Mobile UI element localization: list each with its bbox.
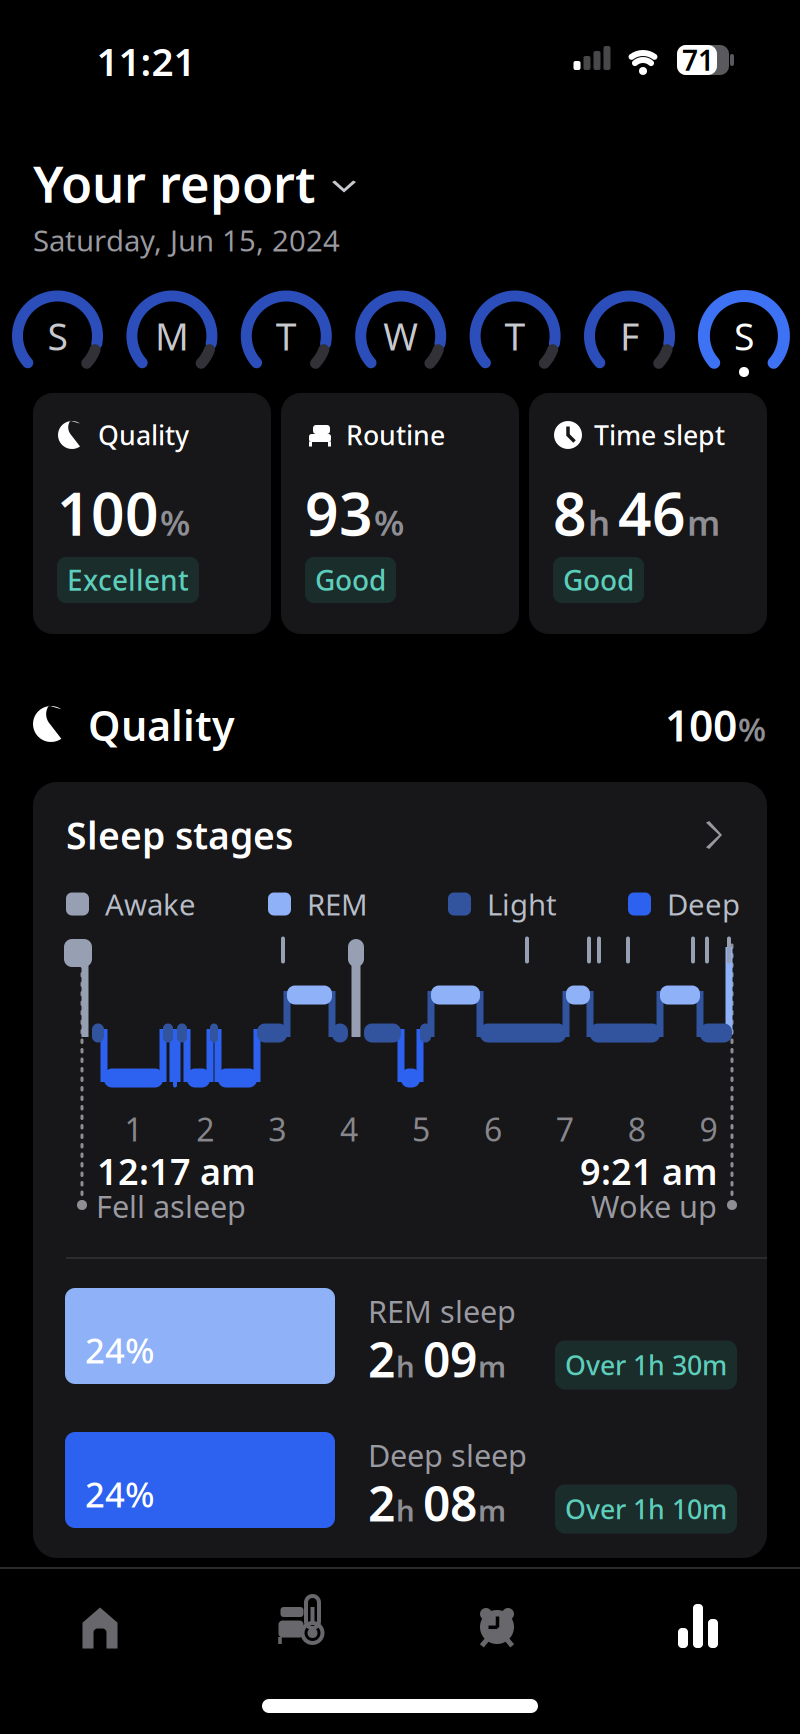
staticText: T — [276, 311, 297, 361]
staticText: Deep sleep — [368, 1435, 527, 1475]
staticText: 8 — [628, 1108, 646, 1150]
staticText: 24% — [85, 1327, 155, 1373]
button[interactable] — [633, 1583, 763, 1673]
staticText: 5 — [412, 1108, 430, 1150]
staticText: h — [396, 1491, 415, 1530]
button[interactable] — [235, 1583, 365, 1673]
button[interactable]: F — [582, 289, 676, 383]
staticText: % — [738, 708, 766, 750]
staticText: Time slept — [594, 417, 725, 453]
staticText: m — [687, 499, 720, 545]
staticText: 4 — [340, 1108, 358, 1150]
button[interactable] — [35, 1583, 165, 1673]
staticText: REM — [307, 884, 368, 923]
staticText: Awake — [105, 884, 196, 923]
button[interactable]: T — [239, 289, 333, 383]
staticText: M — [155, 311, 189, 361]
staticText: T — [505, 311, 526, 361]
staticText: 11:21 — [96, 35, 195, 87]
staticText: 71 — [682, 41, 714, 79]
staticText: Excellent — [67, 561, 189, 599]
staticText: Saturday, Jun 15, 2024 — [33, 220, 340, 259]
staticText: 100 — [57, 474, 159, 552]
staticText: 3 — [268, 1108, 286, 1150]
button[interactable]: Routine — [281, 393, 519, 634]
staticText: 24% — [85, 1471, 155, 1517]
button[interactable]: S — [10, 289, 104, 383]
staticText: 2 — [368, 1327, 395, 1391]
staticText: Good — [563, 561, 634, 599]
staticText: Quality — [88, 698, 235, 752]
staticText: Over 1h 30m — [565, 1347, 727, 1383]
staticText: 2 — [196, 1108, 214, 1150]
staticText: Sleep stages — [66, 810, 293, 860]
staticText: 08 — [423, 1471, 477, 1535]
staticText: F — [620, 311, 639, 361]
staticText: m — [478, 1491, 506, 1530]
staticText: Quality — [98, 417, 189, 453]
staticText: 93 — [305, 474, 373, 552]
staticText: 100 — [665, 697, 737, 753]
button[interactable]: Your report — [0, 0, 800, 1734]
button[interactable]: W — [354, 289, 448, 383]
staticText: Good — [315, 561, 386, 599]
staticText: 9:21 am — [580, 1147, 718, 1195]
staticText: 6 — [484, 1108, 502, 1150]
staticText: 46 — [618, 474, 686, 552]
staticText: 12:17 am — [97, 1147, 256, 1195]
staticText: % — [160, 499, 190, 545]
staticText: h — [396, 1347, 415, 1386]
staticText: h — [588, 499, 610, 545]
staticText: % — [374, 499, 404, 545]
staticText: Routine — [346, 417, 445, 453]
staticText: Over 1h 10m — [565, 1491, 727, 1527]
button[interactable]: Time slept — [529, 393, 767, 634]
staticText: W — [383, 311, 418, 361]
staticText: S — [734, 311, 754, 361]
staticText: Light — [487, 884, 557, 923]
staticText: 9 — [700, 1108, 718, 1150]
staticText: Fell asleep — [96, 1186, 246, 1226]
staticText: 1 — [124, 1108, 142, 1150]
button[interactable]: Quality — [33, 393, 271, 634]
button[interactable]: M — [125, 289, 219, 383]
button[interactable]: S — [697, 289, 791, 383]
staticText: Woke up — [591, 1186, 717, 1226]
staticText: S — [47, 311, 67, 361]
staticText: Deep — [667, 884, 740, 923]
staticText: Your report — [33, 149, 316, 217]
staticText: 8 — [553, 474, 587, 552]
staticText: REM sleep — [368, 1291, 516, 1331]
button[interactable]: T — [468, 289, 562, 383]
staticText: 09 — [423, 1327, 477, 1391]
button[interactable] — [432, 1583, 562, 1673]
staticText: 2 — [368, 1471, 395, 1535]
staticText: 7 — [556, 1108, 574, 1150]
staticText: m — [478, 1347, 506, 1386]
button[interactable]: Sleep stages — [0, 800, 800, 870]
